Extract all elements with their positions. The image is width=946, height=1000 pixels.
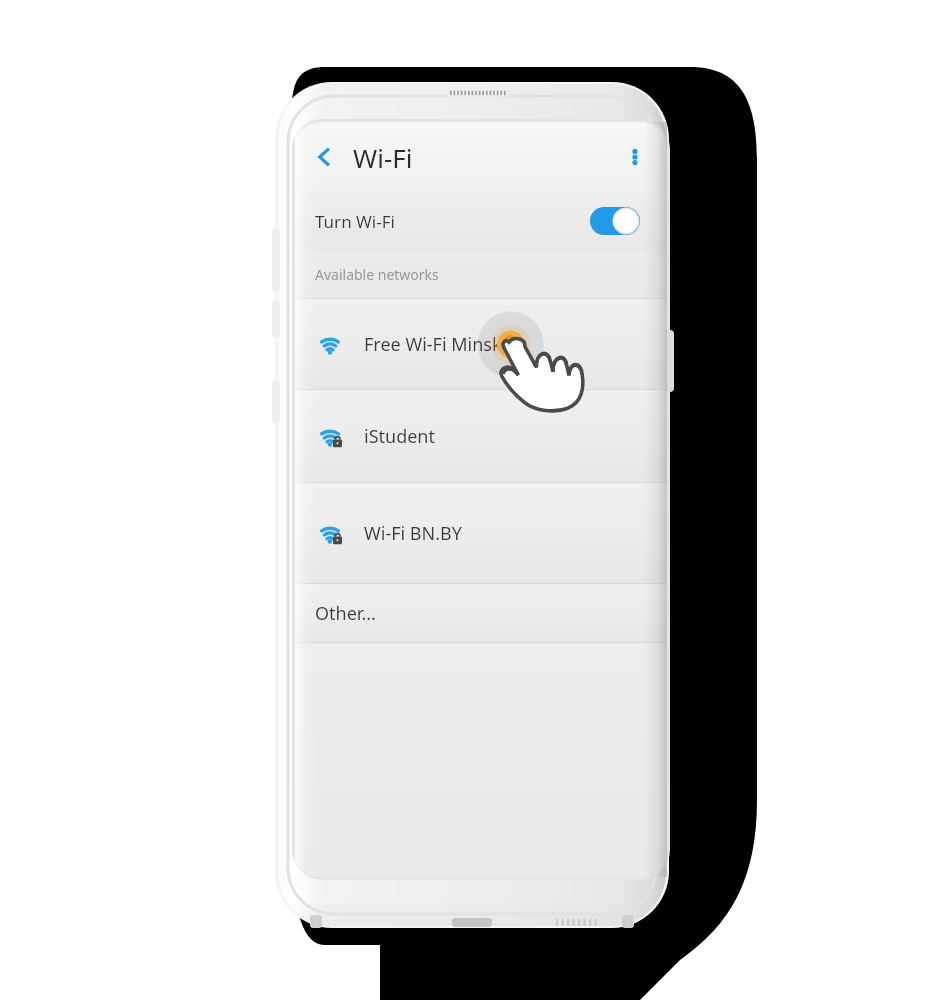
- button[interactable]: Other...: [295, 584, 667, 642]
- button[interactable]: Wi-Fi BN.BY: [295, 483, 667, 583]
- staticText: Available networks: [315, 265, 439, 284]
- button[interactable]: Free Wi-Fi Minsk: [295, 299, 667, 389]
- staticText: Wi-Fi: [353, 140, 413, 175]
- staticText: iStudent: [364, 424, 435, 449]
- button[interactable]: Wi-Fi on: [590, 207, 640, 235]
- button[interactable]: Turn Wi-Fi: [295, 192, 667, 250]
- button[interactable]: iStudent: [295, 390, 667, 482]
- staticText: Free Wi-Fi Minsk: [364, 332, 502, 357]
- staticText: Other...: [315, 601, 376, 626]
- button[interactable]: More options: [615, 137, 655, 177]
- staticText: Wi-Fi BN.BY: [364, 521, 462, 546]
- staticText: Turn Wi-Fi: [315, 210, 395, 233]
- button[interactable]: Back: [303, 135, 347, 179]
